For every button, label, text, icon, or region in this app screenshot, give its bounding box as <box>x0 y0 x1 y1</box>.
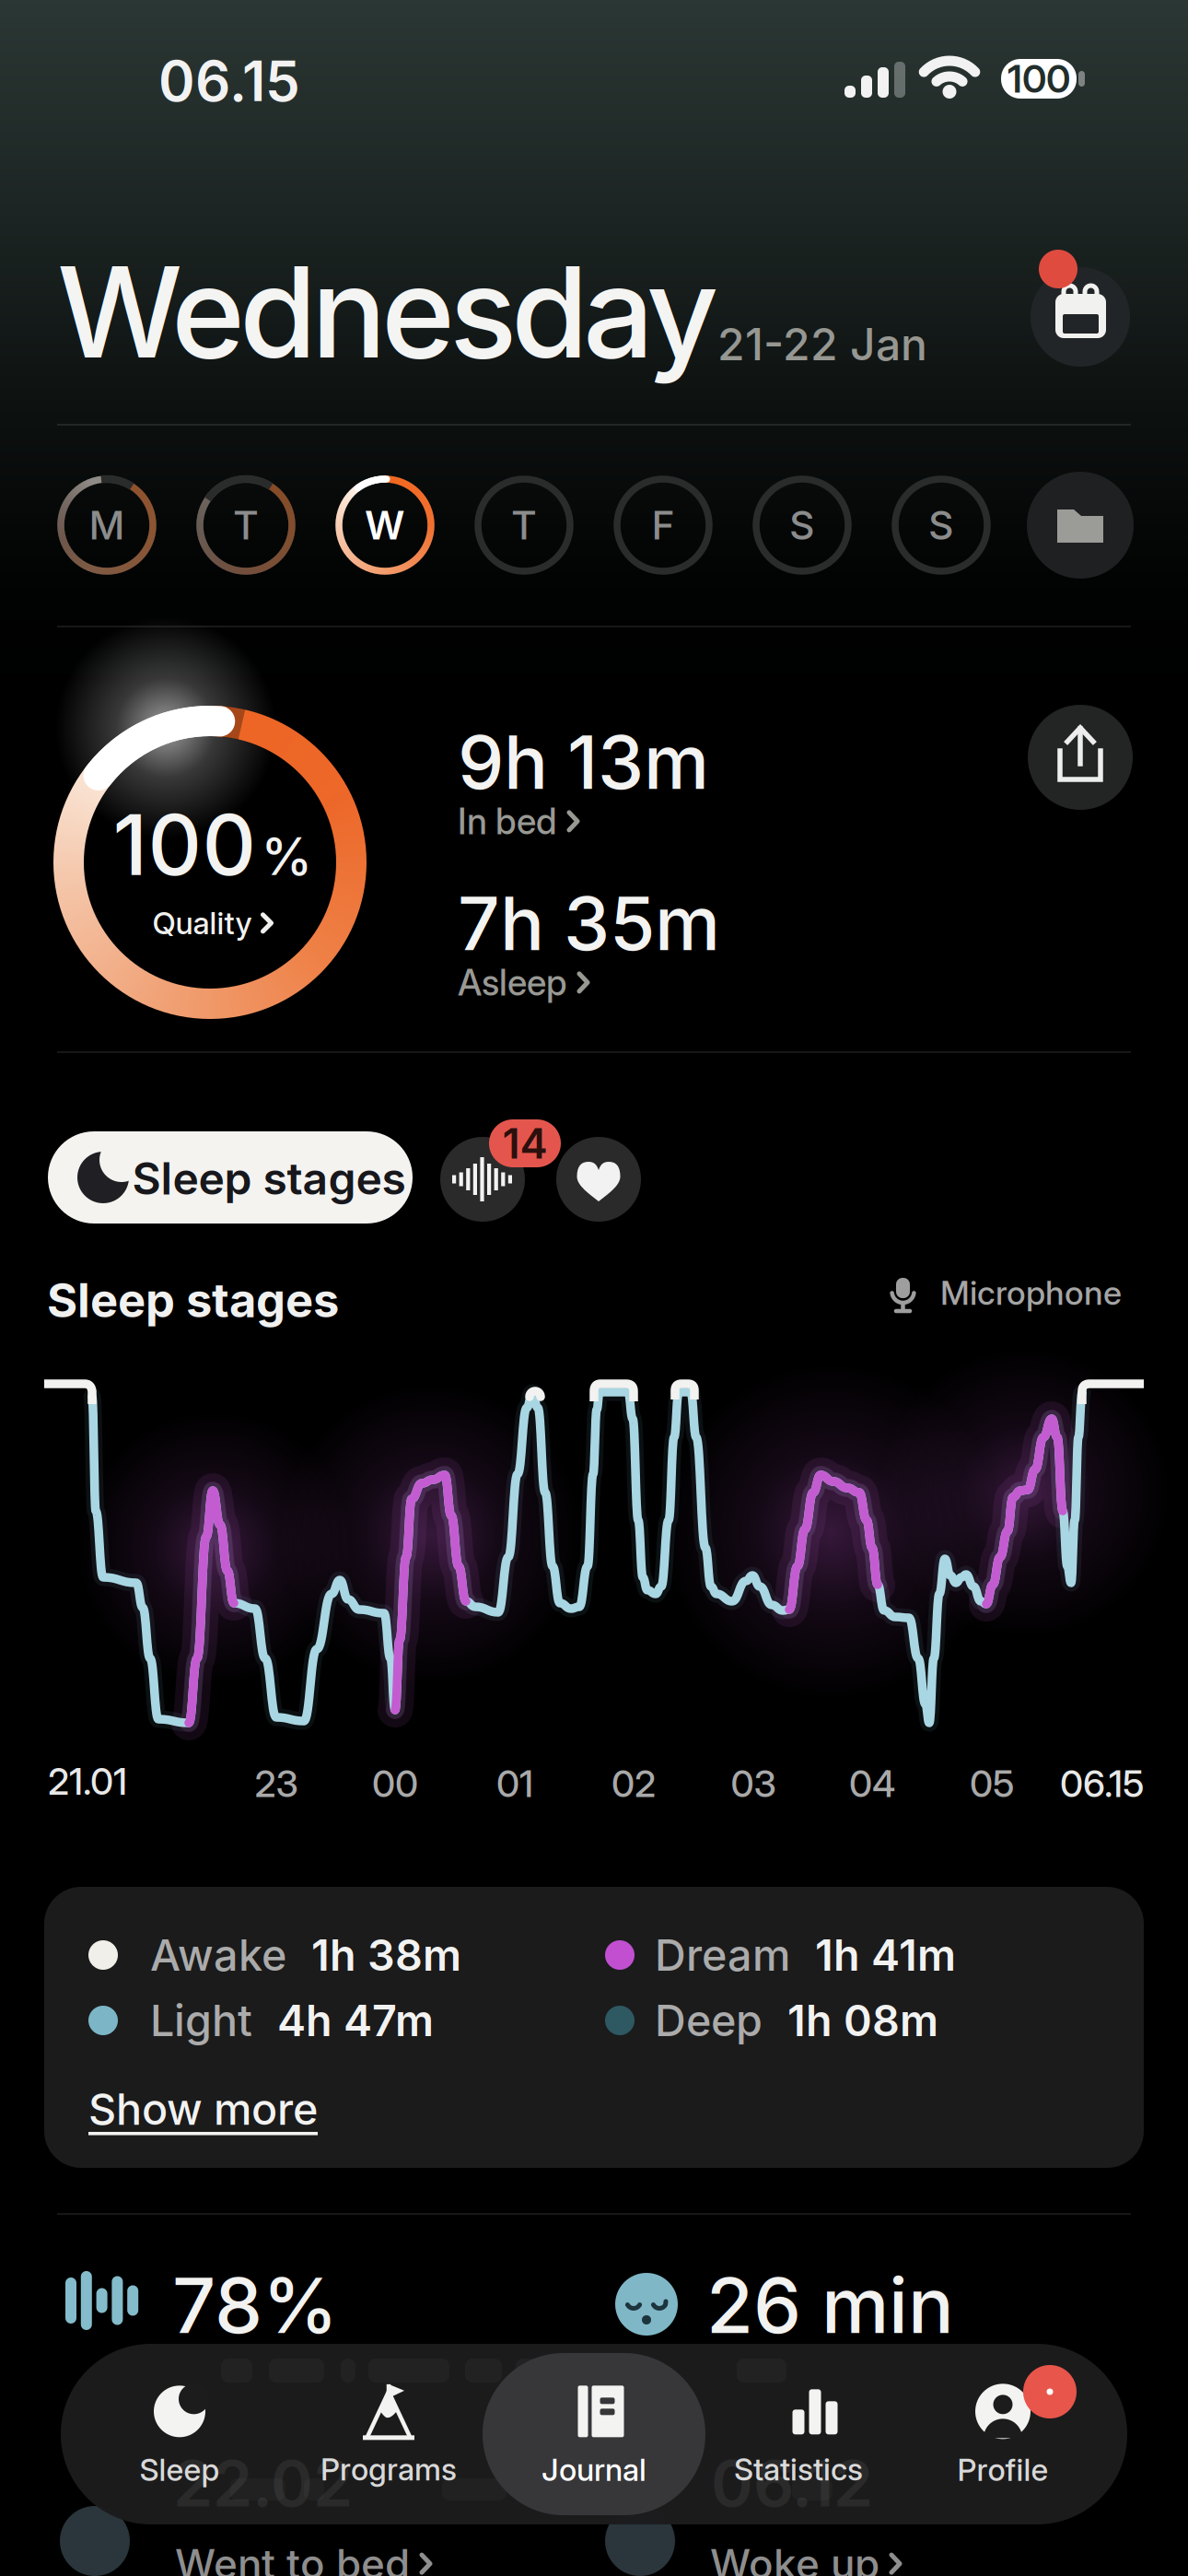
staticText: Deep <box>655 1994 763 2046</box>
staticText: M <box>89 501 125 549</box>
staticText: 21.01 <box>48 1759 127 1804</box>
button[interactable]: Sunday <box>891 475 991 575</box>
staticText: Statistics <box>734 2451 863 2488</box>
button[interactable]: Programs <box>297 2362 481 2510</box>
staticText: 21-22 Jan <box>717 317 927 371</box>
staticText: S <box>789 501 815 549</box>
button[interactable]: Woke up <box>710 2539 902 2576</box>
staticText: % <box>261 825 313 888</box>
staticText: F <box>652 501 675 549</box>
button[interactable]: In bed <box>458 800 579 843</box>
staticText: Awake <box>150 1929 286 1981</box>
button[interactable]: Show more <box>88 2083 318 2135</box>
staticText: 1h 41m <box>815 1929 956 1981</box>
staticText: 78% <box>172 2259 338 2351</box>
staticText: Dream <box>655 1929 790 1981</box>
staticText: Sleep stages <box>47 1272 339 1329</box>
button[interactable]: Sleep stages <box>48 1131 413 1224</box>
staticText: Programs <box>320 2451 457 2488</box>
staticText: 06.12 <box>711 2445 873 2522</box>
staticText: 06.15 <box>1060 1761 1144 1806</box>
staticText: Sleep stages <box>132 1152 406 1205</box>
staticText: Light <box>150 1994 252 2046</box>
button[interactable]: All nights <box>1027 472 1134 579</box>
staticText: 100 <box>113 794 256 895</box>
staticText: Went to bed <box>175 2539 410 2576</box>
button[interactable]: Sleep <box>97 2363 262 2511</box>
staticText: 03 <box>731 1761 776 1806</box>
staticText: 14 <box>502 1118 547 1169</box>
staticText: S <box>928 501 954 549</box>
staticText: 100 <box>1007 56 1070 102</box>
staticText: Quality <box>152 904 252 942</box>
button[interactable]: Monday <box>57 475 157 575</box>
button[interactable]: Statistics <box>706 2364 891 2512</box>
staticText: T <box>233 501 259 549</box>
staticText: 1h 08m <box>787 1994 938 2046</box>
staticText: W <box>365 501 405 549</box>
button[interactable]: Asleep <box>458 961 589 1004</box>
button[interactable]: Calendar <box>1031 267 1130 367</box>
staticText: Show more <box>88 2083 318 2135</box>
staticText: 06.15 <box>158 47 300 114</box>
staticText: In bed <box>458 800 557 843</box>
button[interactable]: Sleep recordings <box>440 1137 525 1222</box>
button[interactable]: Thursday <box>474 475 574 575</box>
button[interactable]: Went to bed <box>175 2539 432 2576</box>
staticText: Wednesday <box>57 236 718 388</box>
staticText: 4h 47m <box>277 1994 434 2046</box>
button[interactable]: Journal <box>493 2363 695 2511</box>
button[interactable]: Saturday <box>752 475 852 575</box>
button[interactable]: Wednesday <box>335 475 435 575</box>
staticText: Profile <box>957 2451 1048 2488</box>
button[interactable]: Favorites <box>556 1137 641 1222</box>
staticText: Asleep <box>458 961 567 1004</box>
button[interactable]: 100 <box>113 794 313 942</box>
staticText: 05 <box>970 1761 1014 1806</box>
staticText: 7h 35m <box>458 879 720 968</box>
staticText: Sleep <box>140 2451 220 2488</box>
button[interactable]: Profile <box>920 2361 1086 2511</box>
staticText: 9h 13m <box>458 717 709 807</box>
staticText: 01 <box>496 1761 533 1806</box>
staticText: 23 <box>255 1761 298 1806</box>
button[interactable]: Friday <box>613 475 713 575</box>
button[interactable]: Share <box>1028 705 1133 810</box>
staticText: 00 <box>372 1761 418 1806</box>
staticText: 26 min <box>706 2259 954 2351</box>
staticText: 04 <box>849 1761 895 1806</box>
staticText: 1h 38m <box>311 1929 461 1981</box>
staticText: 02 <box>611 1761 656 1806</box>
staticText: Microphone <box>940 1273 1122 1313</box>
staticText: T <box>511 501 537 549</box>
staticText: Woke up <box>710 2539 879 2576</box>
staticText: Journal <box>542 2451 646 2488</box>
button[interactable]: Tuesday <box>196 475 296 575</box>
staticText: 22.02 <box>173 2445 353 2522</box>
